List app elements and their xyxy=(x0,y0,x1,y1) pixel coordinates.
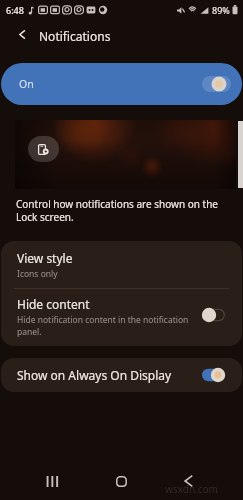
button[interactable]: On xyxy=(201,367,226,383)
staticText: View style xyxy=(17,250,73,266)
button[interactable]: Back xyxy=(164,462,212,500)
staticText: 6:48 xyxy=(6,4,24,16)
button[interactable]: Lock screen preview xyxy=(15,120,236,189)
button[interactable]: Off xyxy=(201,307,226,323)
staticText: Notifications xyxy=(39,28,111,44)
staticText: Show on Always On Display xyxy=(17,367,201,383)
button[interactable]: Recent apps xyxy=(28,462,76,500)
button[interactable]: View style xyxy=(1,241,242,288)
staticText: On xyxy=(19,77,34,91)
staticText: 89% xyxy=(212,4,230,16)
staticText: Icons only xyxy=(17,268,58,280)
button[interactable]: Navigate up xyxy=(8,22,36,46)
button[interactable]: Show on Always On Display xyxy=(1,358,242,392)
staticText: Hide content xyxy=(17,296,90,312)
staticText: Hide notification content in the notific… xyxy=(17,314,195,338)
button[interactable]: Hide content xyxy=(1,289,242,346)
staticText: Control how notifications are shown on t… xyxy=(16,197,218,224)
button[interactable]: On xyxy=(1,63,242,105)
button[interactable]: Home xyxy=(97,462,145,500)
staticText: wsxdn.com xyxy=(165,482,218,496)
